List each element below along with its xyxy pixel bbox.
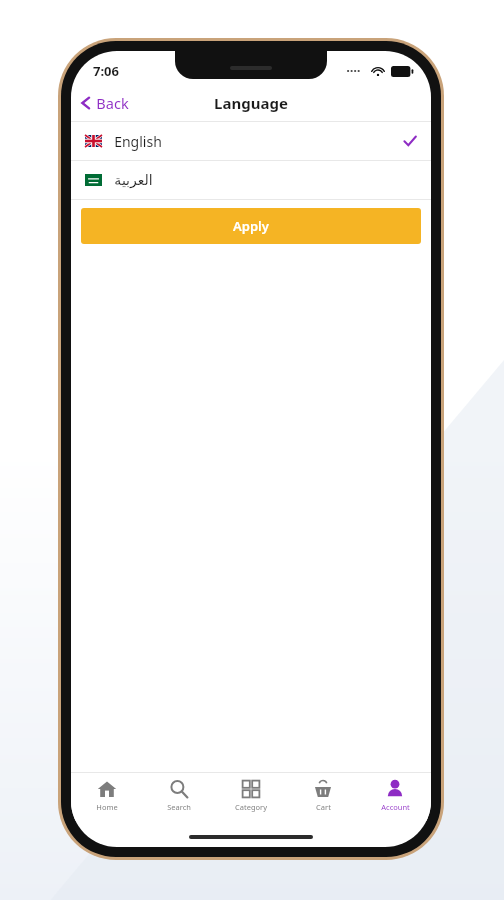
button[interactable]: Account xyxy=(359,773,431,821)
button[interactable]: Back xyxy=(71,89,139,117)
staticText: Account xyxy=(381,802,410,812)
staticText: Category xyxy=(235,802,267,812)
staticText: Cart xyxy=(316,802,331,812)
staticText: Home xyxy=(96,802,118,812)
staticText: Apply xyxy=(233,217,269,235)
staticText: Back xyxy=(96,93,129,113)
staticText: العربية xyxy=(114,172,153,188)
button[interactable]: Category xyxy=(215,773,287,821)
staticText: 7:06 xyxy=(93,62,119,80)
button[interactable]: Search xyxy=(143,773,215,821)
staticText: Search xyxy=(167,802,191,812)
button[interactable]: Home xyxy=(71,773,143,821)
button[interactable]: English xyxy=(71,122,431,160)
staticText: Language xyxy=(214,93,288,113)
button[interactable]: Cart xyxy=(287,773,359,821)
button[interactable]: العربية xyxy=(71,161,431,199)
staticText: English xyxy=(114,132,162,151)
button[interactable]: Apply xyxy=(81,208,421,244)
